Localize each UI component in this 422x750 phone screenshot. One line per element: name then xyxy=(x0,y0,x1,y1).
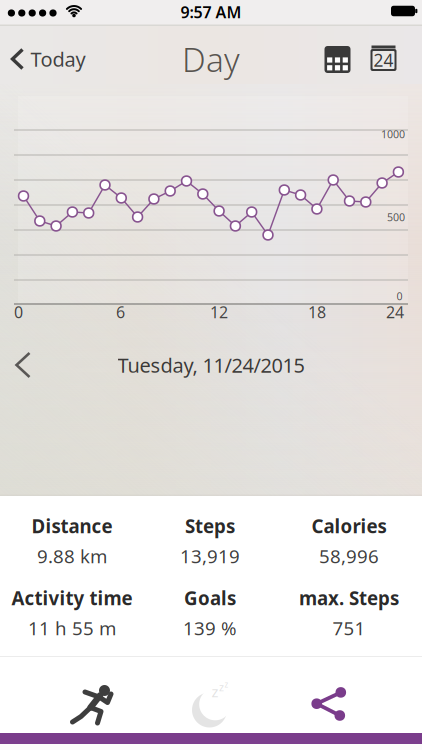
staticText: Steps xyxy=(185,514,235,538)
staticText: Activity time xyxy=(11,586,132,610)
staticText: 9:57 AM xyxy=(180,1,241,23)
staticText: 139 % xyxy=(183,616,237,640)
button[interactable]: Previous day xyxy=(5,343,41,387)
button[interactable]: Back xyxy=(4,37,90,81)
staticText: 1000 xyxy=(381,127,405,141)
staticText: 24 xyxy=(386,301,404,323)
staticText: Day xyxy=(182,37,240,81)
button[interactable]: Calendar view xyxy=(317,37,357,81)
button[interactable]: Activity xyxy=(50,668,140,738)
staticText: Tuesday, 11/24/2015 xyxy=(117,352,304,378)
staticText: Goals xyxy=(184,586,236,610)
staticText: Distance xyxy=(31,514,112,538)
staticText: 6 xyxy=(116,301,125,323)
staticText: 751 xyxy=(332,616,365,640)
staticText: 58,996 xyxy=(319,544,379,568)
staticText: z xyxy=(219,680,224,694)
staticText: z xyxy=(211,682,218,701)
staticText: 500 xyxy=(387,210,405,224)
staticText: 9.88 km xyxy=(37,544,107,568)
staticText: 0 xyxy=(396,289,402,303)
staticText: 11 h 55 m xyxy=(28,616,116,640)
staticText: 13,919 xyxy=(180,544,240,568)
staticText: 24 xyxy=(373,48,393,71)
staticText: max. Steps xyxy=(299,586,399,610)
staticText: 18 xyxy=(308,301,326,323)
staticText: z xyxy=(224,679,228,690)
staticText: 12 xyxy=(210,301,228,323)
staticText: Calories xyxy=(311,514,386,538)
staticText: Today xyxy=(30,46,85,72)
button[interactable]: Share xyxy=(288,668,378,738)
button[interactable]: Sleep xyxy=(166,668,256,738)
button[interactable]: Select day xyxy=(363,37,403,81)
staticText: 0 xyxy=(14,301,23,323)
